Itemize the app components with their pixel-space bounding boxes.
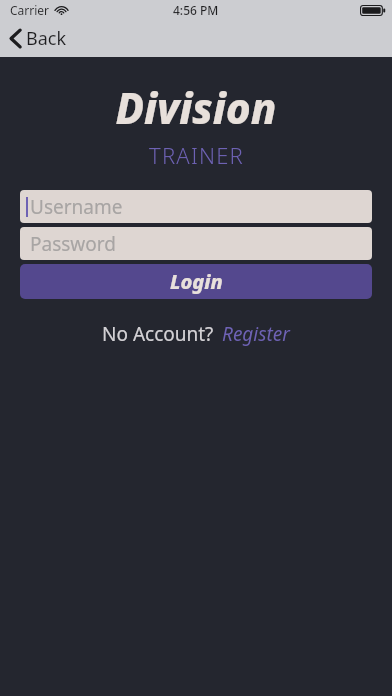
button[interactable]: Back <box>0 22 81 55</box>
staticText: TRAINER <box>149 140 244 170</box>
staticText: No Account? <box>102 321 214 347</box>
button[interactable]: Username <box>20 190 372 223</box>
button[interactable]: Password <box>20 227 372 260</box>
staticText: Login <box>170 268 223 295</box>
other: Back <box>10 29 21 48</box>
button[interactable]: Register <box>221 319 291 349</box>
staticText: Password <box>30 231 116 257</box>
staticText: Carrier <box>10 2 50 18</box>
staticText: Register <box>222 321 290 347</box>
staticText: Back <box>26 26 67 51</box>
staticText: 4:56 PM <box>173 2 219 18</box>
staticText: Division <box>115 79 277 136</box>
button[interactable]: Login <box>20 264 372 299</box>
staticText: Username <box>30 194 123 220</box>
